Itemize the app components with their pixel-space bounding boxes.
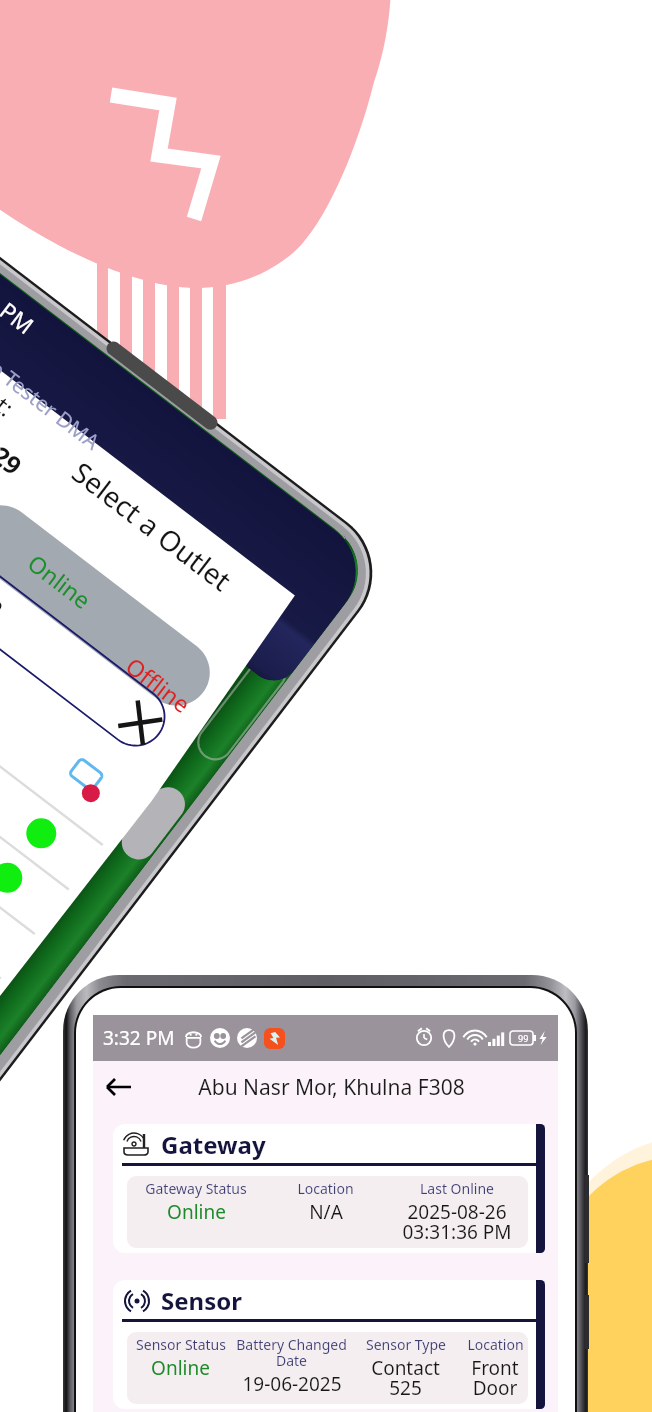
staticText: Location	[467, 1335, 524, 1354]
staticText: 3:32 PM	[0, 263, 41, 340]
button[interactable]: Gateway	[113, 1124, 536, 1253]
staticText: ame or code	[0, 514, 12, 621]
staticText: Offline	[120, 650, 197, 719]
staticText: Online	[22, 547, 98, 615]
staticText: 629	[0, 429, 29, 482]
staticText: N/A	[309, 1199, 343, 1225]
staticText: Sensor Status	[136, 1335, 226, 1354]
staticText: Welcome Tester DMA	[0, 306, 106, 457]
staticText: Sensor Type	[366, 1335, 446, 1354]
staticText: Sensor	[161, 1284, 242, 1317]
staticText: Abu Nasr Mor, Khulna F308	[145, 1073, 518, 1102]
button[interactable]: Sensor	[113, 1280, 536, 1409]
staticText: Online	[151, 1355, 210, 1381]
staticText: utlet:	[0, 364, 20, 423]
staticText: Gateway Status	[145, 1179, 247, 1198]
staticText: Gateway	[161, 1128, 266, 1161]
staticText: Last Online	[420, 1179, 494, 1198]
staticText: Contact 525	[371, 1355, 440, 1401]
staticText: Location	[297, 1179, 354, 1198]
staticText: Battery Changed Date	[234, 1335, 349, 1370]
staticText: 99	[518, 1032, 529, 1044]
staticText: 19-06-2025	[242, 1371, 342, 1397]
staticText: Select a Outlet	[65, 453, 240, 599]
button[interactable]: Back	[93, 1061, 145, 1113]
staticText: Online	[167, 1199, 226, 1225]
staticText: 2025-08-26 03:31:36 PM	[402, 1199, 512, 1245]
staticText: 3:32 PM	[103, 1025, 175, 1051]
staticText: Front Door	[471, 1355, 519, 1401]
